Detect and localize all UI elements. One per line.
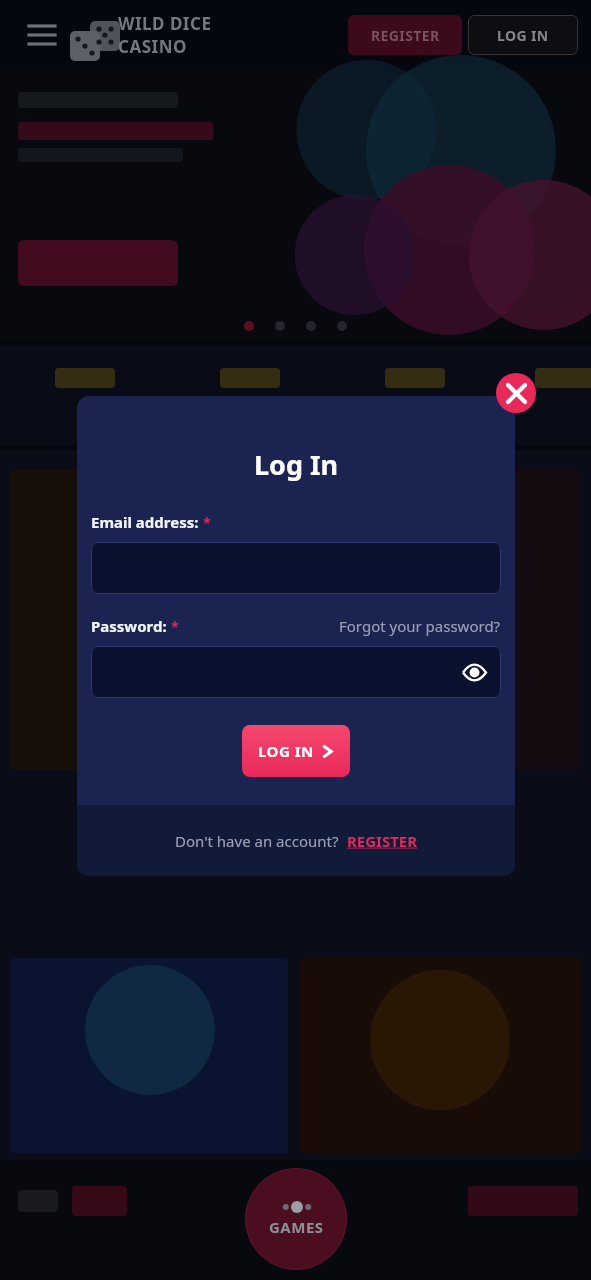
button[interactable]: Menu <box>22 15 62 55</box>
staticText: Password: <box>91 616 167 636</box>
staticText: Log In <box>91 446 501 483</box>
staticText: Email address: <box>91 512 199 532</box>
button[interactable]: Show password <box>457 655 491 689</box>
button[interactable]: Show password <box>91 646 501 698</box>
button[interactable]: LOG IN <box>468 15 578 55</box>
staticText: CASINO <box>118 35 187 58</box>
button[interactable]: Wild Dice Casino home <box>68 12 212 58</box>
staticText: GAMES <box>269 1217 324 1237</box>
staticText: LOG IN <box>497 26 549 45</box>
button[interactable]: LOG IN <box>242 725 350 777</box>
button[interactable]: Forgot your password? <box>339 616 501 636</box>
button[interactable]: REGISTER <box>348 15 462 55</box>
button[interactable]: Close <box>496 373 536 413</box>
staticText: LOG IN <box>258 741 314 761</box>
button[interactable] <box>91 542 501 594</box>
button[interactable]: Don't have an account? <box>175 831 418 851</box>
staticText: REGISTER <box>347 831 418 851</box>
staticText: * <box>171 617 179 636</box>
staticText: Don't have an account? <box>175 831 339 851</box>
button[interactable]: GAMES <box>245 1168 347 1270</box>
staticText: * <box>203 513 211 532</box>
staticText: WILD DICE <box>118 12 212 35</box>
staticText: REGISTER <box>371 26 440 45</box>
